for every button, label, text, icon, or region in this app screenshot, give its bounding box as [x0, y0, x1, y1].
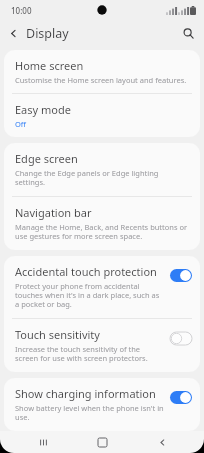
button[interactable]: Touch sensitivity off: [170, 332, 192, 345]
staticText: Manage the Home, Back, and Recents butto…: [15, 222, 189, 242]
staticText: Off: [15, 119, 27, 129]
staticText: Touch sensitivity: [15, 327, 100, 342]
button[interactable]: Accidental touch protection: [4, 256, 200, 318]
button[interactable]: Recents: [26, 431, 60, 453]
button[interactable]: Edge screen: [4, 143, 200, 196]
button[interactable]: Back: [145, 431, 179, 453]
button[interactable]: Navigation bar: [4, 197, 200, 250]
staticText: Show battery level when the phone isn't …: [15, 403, 164, 423]
staticText: Increase the touch sensitivity of the sc…: [15, 344, 164, 364]
button[interactable]: Home: [85, 431, 119, 453]
staticText: Change the Edge panels or Edge lighting …: [15, 168, 189, 188]
staticText: Display: [26, 25, 69, 42]
staticText: Customise the Home screen layout and fea…: [15, 75, 187, 85]
button[interactable]: Home screen: [4, 50, 200, 93]
staticText: Home screen: [15, 58, 84, 73]
button[interactable]: Search: [175, 20, 201, 46]
button[interactable]: Show charging information on: [170, 391, 192, 404]
button[interactable]: Show charging information: [4, 378, 200, 431]
staticText: Show charging information: [15, 386, 156, 401]
staticText: Navigation bar: [15, 205, 92, 220]
button[interactable]: Easy mode: [4, 94, 200, 137]
button[interactable]: Touch sensitivity: [4, 319, 200, 372]
button[interactable]: Accidental touch protection on: [170, 269, 192, 282]
staticText: Protect your phone from accidental touch…: [15, 281, 164, 310]
staticText: Easy mode: [15, 102, 71, 117]
button[interactable]: Back: [0, 20, 26, 46]
staticText: Edge screen: [15, 151, 78, 166]
staticText: 10:00: [11, 5, 32, 16]
staticText: Accidental touch protection: [15, 264, 157, 279]
